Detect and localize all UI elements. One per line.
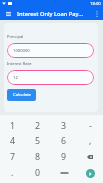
staticText: 4 <box>10 135 16 147</box>
button[interactable]: 9 <box>51 149 77 165</box>
button[interactable]: 0 <box>25 165 51 181</box>
button[interactable]: Calculate <box>7 89 36 101</box>
staticText: 3 <box>61 120 67 132</box>
staticText: 12 <box>13 75 18 81</box>
staticText: 1 <box>10 120 16 132</box>
button[interactable]: , <box>77 133 103 149</box>
button[interactable]: 1000000 <box>7 43 94 58</box>
staticText: Calculate <box>13 92 31 98</box>
staticText: Interest Only Loan Pay... <box>17 10 83 18</box>
button[interactable]: 2 <box>25 118 51 133</box>
staticText: 7 <box>10 151 16 163</box>
staticText: Principal <box>7 34 24 39</box>
button[interactable]: 8 <box>25 149 51 165</box>
staticText: 8 <box>35 151 41 163</box>
staticText: , <box>89 135 92 147</box>
button[interactable]: 7 <box>0 149 25 165</box>
button[interactable]: Space <box>51 165 77 181</box>
staticText: 6 <box>61 135 67 147</box>
staticText: 1000000 <box>13 48 30 54</box>
button[interactable]: - <box>77 118 103 133</box>
button[interactable]: 3 <box>51 118 77 133</box>
button[interactable]: Backspace <box>77 149 103 165</box>
button[interactable]: More options <box>90 7 103 20</box>
button[interactable]: Enter <box>77 165 103 181</box>
button[interactable]: 5 <box>25 133 51 149</box>
button[interactable]: 1 <box>0 118 25 133</box>
staticText: - <box>89 120 92 132</box>
staticText: 2 <box>35 120 41 132</box>
button[interactable]: . <box>0 165 25 181</box>
staticText: . <box>11 167 14 179</box>
button[interactable]: 12 <box>7 70 94 85</box>
button[interactable]: 4 <box>0 133 25 149</box>
staticText: 0 <box>35 167 41 179</box>
button[interactable]: 6 <box>51 133 77 149</box>
staticText: 9 <box>61 151 67 163</box>
staticText: 18:00 <box>90 1 101 7</box>
button[interactable]: Open navigation menu <box>0 7 17 20</box>
staticText: Interest Rate: <box>7 61 33 66</box>
staticText: 5 <box>35 135 41 147</box>
